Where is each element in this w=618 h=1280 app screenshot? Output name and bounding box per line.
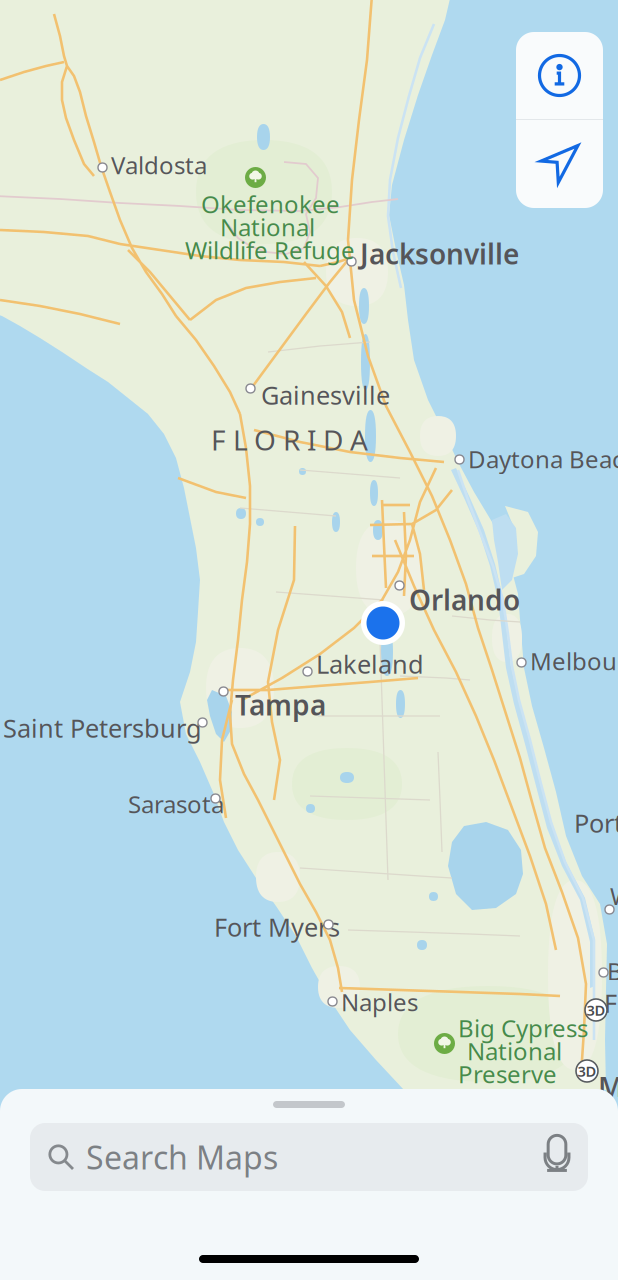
staticText: W bbox=[610, 880, 618, 912]
button[interactable]: Search Maps bbox=[30, 1123, 588, 1191]
staticText: B bbox=[607, 955, 618, 987]
staticText: National bbox=[467, 1035, 562, 1067]
staticText: M bbox=[598, 1068, 618, 1105]
button[interactable]: 3D view bbox=[576, 1060, 598, 1082]
staticText: Naples bbox=[341, 986, 418, 1018]
staticText: 3D bbox=[586, 1000, 605, 1020]
staticText: Big Cypress bbox=[458, 1012, 588, 1044]
staticText: Okefenokee bbox=[201, 188, 340, 220]
staticText: Preserve bbox=[458, 1058, 557, 1090]
staticText: Fort Myers bbox=[214, 910, 340, 944]
staticText: National bbox=[220, 211, 315, 243]
button[interactable]: Map information bbox=[516, 32, 603, 119]
staticText: Sarasota bbox=[128, 788, 224, 820]
staticText: Port bbox=[574, 806, 618, 840]
staticText: Saint Petersburg bbox=[3, 711, 202, 745]
staticText: Melbourn bbox=[530, 645, 618, 677]
staticText: FLORIDA bbox=[211, 421, 368, 458]
staticText: Search Maps bbox=[86, 1136, 278, 1178]
staticText: Tampa bbox=[235, 686, 326, 723]
staticText: F bbox=[604, 986, 617, 1020]
staticText: Jacksonville bbox=[360, 235, 519, 272]
staticText: Valdosta bbox=[111, 149, 207, 181]
button[interactable]: Current location bbox=[516, 120, 603, 208]
staticText: Daytona Beach bbox=[468, 443, 618, 475]
button[interactable]: 3D view bbox=[585, 999, 607, 1021]
staticText: Orlando bbox=[409, 581, 520, 618]
staticText: Wildlife Refuge bbox=[185, 234, 355, 266]
staticText: Lakeland bbox=[316, 647, 424, 681]
staticText: Gainesville bbox=[261, 378, 390, 412]
staticText: 3D bbox=[577, 1061, 596, 1081]
